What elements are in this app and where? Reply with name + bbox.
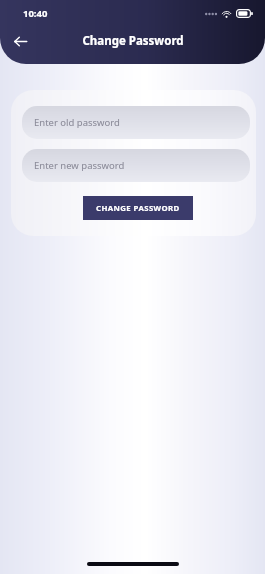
staticText: CHANGE PASSWORD [96,203,180,214]
button[interactable]: Enter old password [22,106,250,139]
button[interactable]: CHANGE PASSWORD [83,196,193,220]
staticText: Change Password [82,33,184,49]
staticText: 10:40 [23,7,48,20]
button[interactable]: Enter new password [22,149,250,182]
staticText: Enter new password [34,159,125,172]
button[interactable]: Back [7,28,33,54]
staticText: Enter old password [34,116,120,129]
